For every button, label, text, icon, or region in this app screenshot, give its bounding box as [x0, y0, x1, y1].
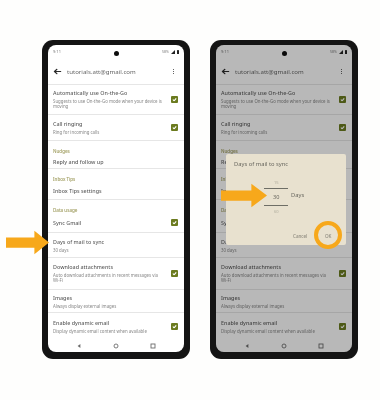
staticText: Enable dynamic email [53, 319, 110, 326]
staticText: Download attachments [221, 263, 282, 270]
staticText: Always display external images [221, 303, 285, 309]
staticText: 60 [274, 209, 279, 214]
staticText: tutorials.att@gmail.com [67, 67, 136, 75]
staticText: Ring for incoming calls [221, 129, 268, 135]
staticText: 58% [330, 49, 337, 54]
staticText: Ring for incoming calls [53, 129, 100, 135]
button[interactable]: Inbox Tips settings [48, 182, 184, 199]
staticText: Auto download attachments in recent mess… [221, 272, 327, 284]
button[interactable]: Enable dynamic email [48, 313, 184, 339]
staticText: Inbox Tips settings [53, 187, 102, 194]
button[interactable]: Sync Gmail [216, 213, 352, 232]
button[interactable]: Toggle setting [339, 96, 346, 103]
button[interactable]: Toggle setting [339, 270, 346, 277]
staticText: Inbox Tips settings [221, 187, 270, 194]
button[interactable]: Back [73, 340, 85, 352]
staticText: 30 days [53, 247, 69, 253]
button[interactable]: Recents [315, 340, 327, 352]
button[interactable]: Call ringing [216, 115, 352, 140]
button[interactable]: Enable dynamic email [216, 313, 352, 339]
button[interactable]: More options [335, 65, 348, 78]
staticText: Enable dynamic email [221, 319, 278, 326]
staticText: Inbox Tips [53, 176, 76, 182]
button[interactable]: Toggle setting [171, 124, 178, 131]
staticText: Nudges [221, 148, 238, 154]
staticText: Images [221, 294, 241, 301]
button[interactable]: Call ringing [48, 115, 184, 140]
staticText: Call ringing [53, 120, 83, 127]
staticText: OK [325, 233, 332, 239]
button[interactable]: Back [241, 340, 253, 352]
staticText: Auto download attachments in recent mess… [53, 272, 159, 284]
button[interactable]: Reply and follow up [216, 154, 352, 168]
staticText: 9:11 [221, 49, 229, 54]
staticText: Data usage [53, 207, 78, 213]
button[interactable]: Toggle setting [171, 96, 178, 103]
staticText: Sync Gmail [53, 219, 82, 226]
button[interactable]: Automatically use On-the-Go [48, 85, 184, 114]
button[interactable]: Days of mail to sync [48, 233, 184, 257]
button[interactable]: Home [278, 340, 290, 352]
button[interactable]: Images [48, 290, 184, 312]
button[interactable]: Days of mail to sync [216, 233, 352, 257]
staticText: 30 [273, 193, 280, 201]
staticText: Cancel [293, 233, 308, 239]
staticText: Automatically use On-the-Go [53, 89, 128, 96]
button[interactable]: Cancel [290, 230, 311, 242]
staticText: Sync Gmail [221, 219, 250, 226]
staticText: Data usage [221, 207, 246, 213]
staticText: Download attachments [53, 263, 114, 270]
staticText: Days of mail to sync [53, 238, 105, 245]
staticText: tutorials.att@gmail.com [235, 67, 304, 75]
button[interactable]: Recents [147, 340, 159, 352]
staticText: Nudges [53, 148, 70, 154]
button[interactable]: Home [110, 340, 122, 352]
staticText: Reply and follow up [221, 158, 272, 165]
staticText: Reply and follow up [53, 158, 104, 165]
button[interactable]: Toggle setting [171, 219, 178, 226]
staticText: Days [291, 191, 305, 199]
staticText: Always display external images [53, 303, 117, 309]
staticText: 15 [274, 180, 279, 185]
staticText: Days of mail to sync [234, 160, 289, 168]
staticText: 58% [162, 49, 169, 54]
button[interactable]: Toggle setting [339, 323, 346, 330]
staticText: 30 days [221, 247, 237, 253]
staticText: Days of mail to sync [221, 238, 273, 245]
button[interactable]: OK [322, 230, 335, 242]
staticText: Automatically use On-the-Go [221, 89, 296, 96]
staticText: Suggests to use On-the-Go mode when your… [221, 98, 330, 110]
staticText: Call ringing [221, 120, 251, 127]
staticText: Suggests to use On-the-Go mode when your… [53, 98, 162, 110]
staticText: Images [53, 294, 73, 301]
button[interactable]: Sync Gmail [48, 213, 184, 232]
staticText: Display dynamic email content when avail… [53, 328, 147, 334]
staticText: 9:11 [53, 49, 61, 54]
button[interactable]: Back [220, 66, 231, 77]
button[interactable]: Reply and follow up [48, 154, 184, 168]
button[interactable]: Back [52, 66, 63, 77]
staticText: Inbox Tips [221, 176, 244, 182]
button[interactable]: Toggle setting [171, 323, 178, 330]
button[interactable]: Automatically use On-the-Go [216, 85, 352, 114]
button[interactable]: Download attachments [48, 258, 184, 289]
button[interactable]: Toggle setting [339, 124, 346, 131]
button[interactable]: Images [216, 290, 352, 312]
button[interactable]: More options [167, 65, 180, 78]
staticText: Display dynamic email content when avail… [221, 328, 315, 334]
button[interactable]: Toggle setting [171, 270, 178, 277]
button[interactable]: Download attachments [216, 258, 352, 289]
button[interactable]: Inbox Tips settings [216, 182, 352, 199]
